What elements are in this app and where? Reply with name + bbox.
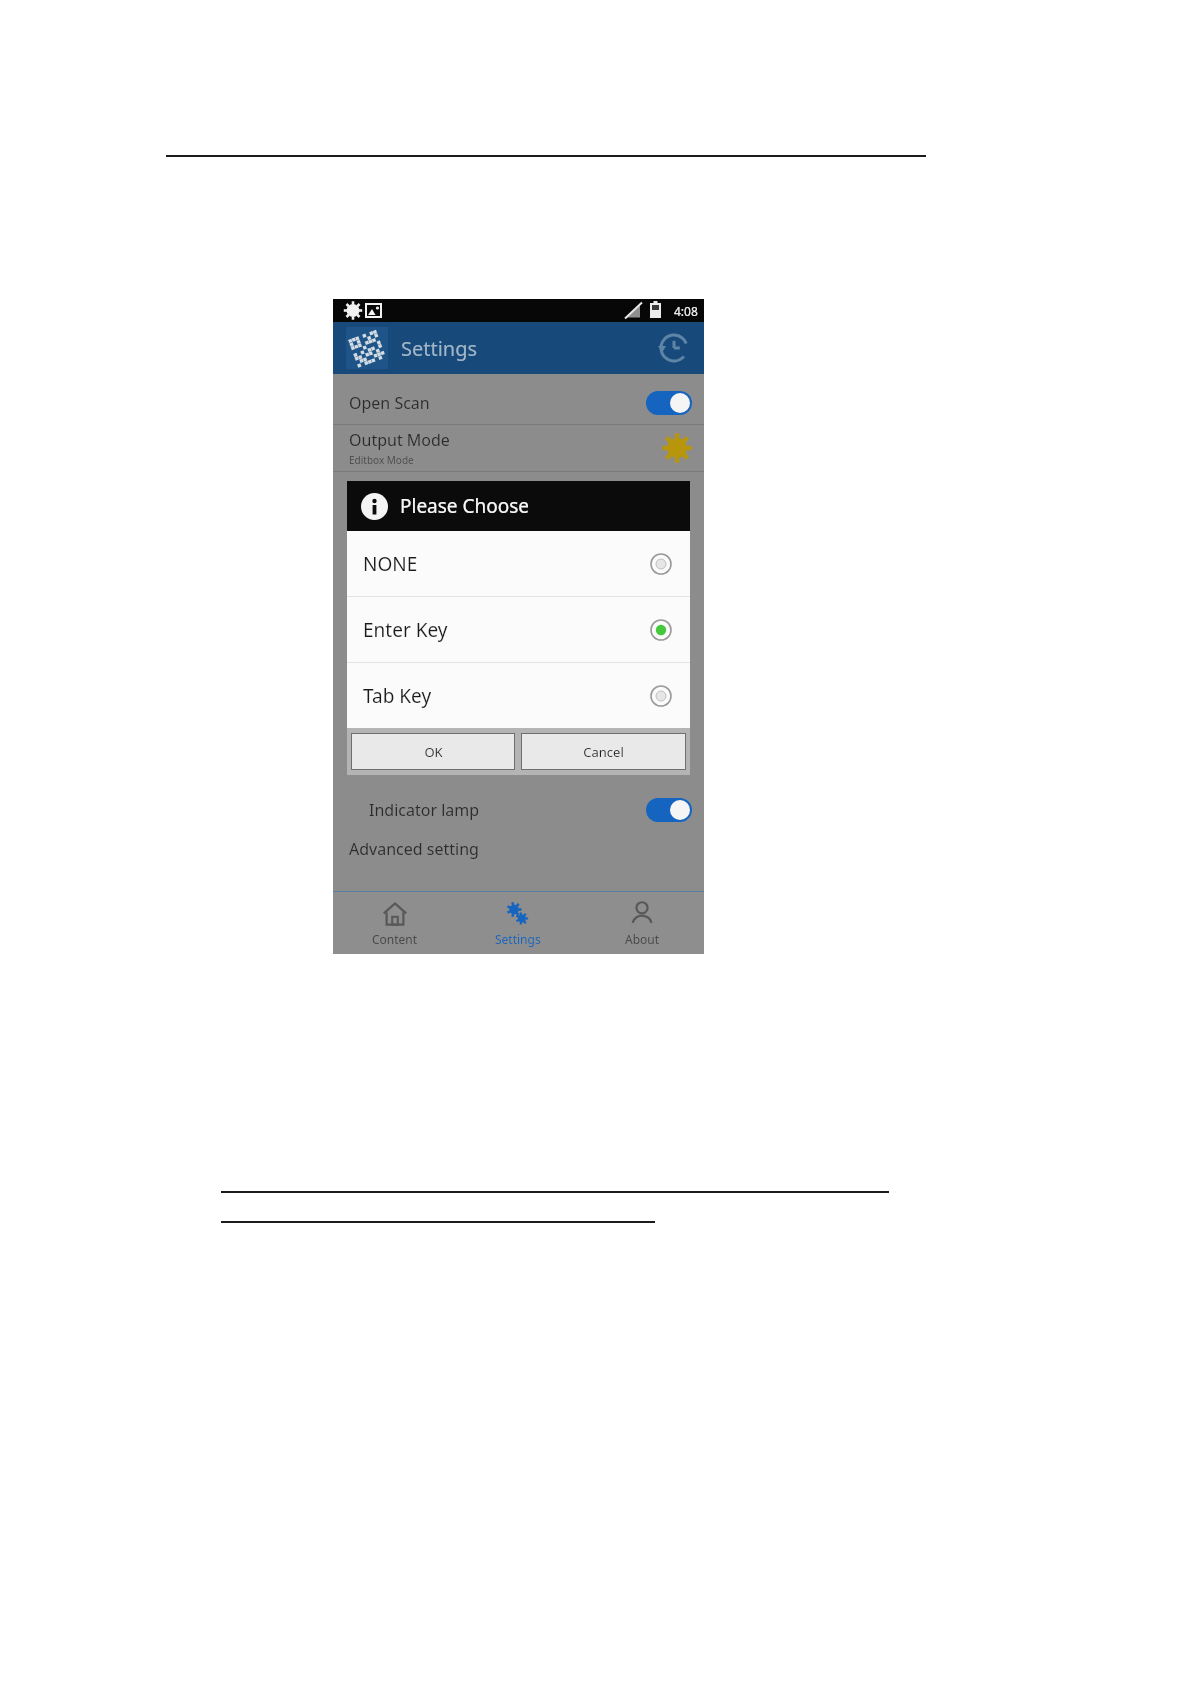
staticText: Output Mode bbox=[349, 429, 450, 451]
staticText: 4:08 bbox=[674, 303, 698, 319]
button[interactable]: History bbox=[654, 328, 694, 368]
button[interactable]: Open Scan bbox=[333, 382, 704, 424]
staticText: About bbox=[625, 931, 660, 947]
staticText: Enter Key bbox=[363, 617, 650, 643]
button[interactable]: Toggle bbox=[646, 391, 692, 415]
staticText: Please Choose bbox=[400, 493, 530, 519]
staticText: Tab Key bbox=[363, 683, 650, 709]
staticText: Editbox Mode bbox=[349, 453, 414, 467]
button[interactable]: NONE bbox=[347, 531, 690, 596]
button[interactable]: Enter Key bbox=[347, 597, 690, 662]
staticText: Settings bbox=[401, 335, 478, 362]
staticText: NONE bbox=[363, 551, 650, 577]
button[interactable]: Output Mode bbox=[333, 425, 704, 471]
button[interactable]: Indicator lamp bbox=[333, 788, 704, 832]
button[interactable]: About bbox=[580, 892, 704, 954]
staticText: OK bbox=[424, 743, 443, 761]
staticText: Cancel bbox=[583, 743, 624, 761]
button[interactable]: Cancel bbox=[521, 733, 686, 770]
staticText: Settings bbox=[495, 931, 541, 947]
button[interactable]: Content bbox=[333, 892, 456, 954]
button[interactable]: Advanced setting bbox=[333, 832, 704, 866]
button[interactable]: Settings bbox=[456, 892, 580, 954]
button[interactable]: Tab Key bbox=[347, 663, 690, 728]
button[interactable]: OK bbox=[351, 733, 515, 770]
staticText: Advanced setting bbox=[349, 838, 479, 860]
staticText: Indicator lamp bbox=[369, 799, 480, 821]
staticText: Content bbox=[372, 931, 418, 947]
staticText: Open Scan bbox=[349, 392, 430, 414]
button[interactable]: App icon bbox=[345, 326, 389, 370]
button[interactable]: Toggle bbox=[646, 798, 692, 822]
